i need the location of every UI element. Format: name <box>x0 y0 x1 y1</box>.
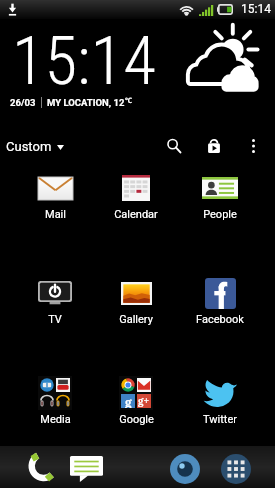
staticText: Google <box>119 413 154 426</box>
staticText: 15:14 <box>12 22 156 101</box>
button[interactable]: Facebook <box>183 276 257 326</box>
button[interactable]: Search <box>158 131 190 161</box>
button[interactable]: Play Store <box>198 131 230 161</box>
staticText: Calendar <box>114 208 158 221</box>
button[interactable]: More options <box>238 131 268 161</box>
staticText: TV <box>48 313 62 326</box>
button[interactable]: Media <box>18 376 92 426</box>
staticText: Media <box>40 413 71 426</box>
staticText: g+ <box>138 394 150 408</box>
button[interactable]: All apps <box>216 449 255 488</box>
button[interactable]: TV <box>18 276 92 326</box>
button[interactable]: Camera <box>165 449 204 488</box>
button[interactable]: Mail <box>18 171 92 221</box>
button[interactable]: People <box>183 171 257 221</box>
button[interactable]: Calendar <box>99 171 173 221</box>
staticText: 26/03 <box>10 97 36 108</box>
staticText: Custom <box>6 139 52 154</box>
button[interactable]: Twitter <box>183 376 257 426</box>
staticText: MY LOCATION, 12 <box>47 97 125 108</box>
staticText: g <box>125 394 132 408</box>
button[interactable]: Gallery <box>99 276 173 326</box>
button[interactable]: Custom <box>0 134 72 159</box>
button[interactable]: Messages <box>67 449 106 488</box>
staticText: 15:14 <box>241 2 271 16</box>
staticText: Gallery <box>119 313 153 326</box>
staticText: Twitter <box>203 413 237 426</box>
staticText: Facebook <box>196 313 244 326</box>
button[interactable]: g <box>99 376 173 426</box>
staticText: Mail <box>45 208 66 221</box>
staticText: People <box>203 208 237 221</box>
button[interactable]: Phone <box>16 449 55 488</box>
staticText: ℃ <box>125 96 133 106</box>
